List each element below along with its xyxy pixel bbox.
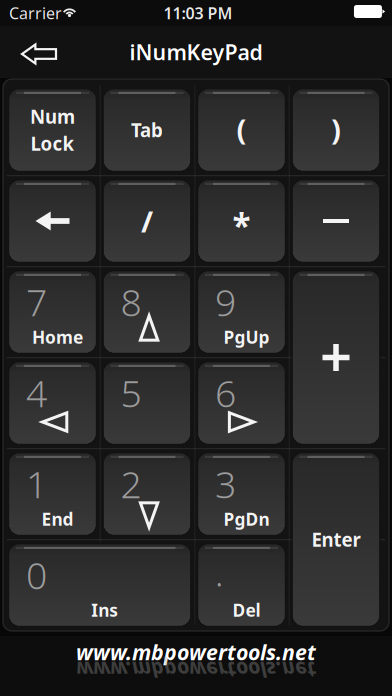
staticText: Num — [30, 104, 75, 129]
button[interactable]: * — [197, 179, 286, 263]
staticText: PgDn — [223, 507, 269, 530]
button[interactable]: 1 — [8, 452, 97, 536]
staticText: . — [215, 550, 223, 596]
staticText: Enter — [311, 527, 360, 552]
button[interactable]: 5 — [102, 361, 191, 445]
staticText: www.mbpowertools.net — [76, 638, 316, 666]
staticText: 6 — [215, 368, 236, 418]
button[interactable]: ( — [197, 88, 286, 172]
staticText: Del — [232, 598, 260, 621]
button[interactable]: 7 — [8, 270, 97, 354]
staticText: Home — [32, 325, 83, 348]
button[interactable]: 9 — [197, 270, 286, 354]
staticText: 2 — [120, 459, 141, 509]
staticText: 4 — [26, 368, 47, 418]
staticText: Tab — [131, 118, 163, 142]
staticText: 3 — [215, 459, 236, 509]
staticText: End — [41, 507, 73, 530]
button[interactable]: / — [102, 179, 191, 263]
button[interactable]: Back — [8, 31, 70, 77]
button[interactable]: ) — [291, 88, 380, 172]
button[interactable]: Tab — [102, 88, 191, 172]
button[interactable]: Plus — [291, 270, 380, 445]
button[interactable]: 8 — [102, 270, 191, 354]
staticText: 11:03 PM — [163, 2, 232, 24]
staticText: Ins — [91, 598, 118, 621]
staticText: Lock — [30, 131, 74, 156]
staticText: 5 — [120, 368, 141, 418]
staticText: PgUp — [223, 325, 269, 348]
staticText: ) — [331, 109, 341, 148]
staticText: 8 — [120, 277, 141, 327]
button[interactable]: Enter — [291, 452, 380, 627]
button[interactable]: Num — [8, 88, 97, 172]
staticText: ( — [236, 109, 246, 148]
staticText: 7 — [26, 277, 47, 327]
button[interactable]: 3 — [197, 452, 286, 536]
staticText: 1 — [26, 459, 47, 509]
button[interactable]: 6 — [197, 361, 286, 445]
button[interactable]: Minus — [291, 179, 380, 263]
staticText: 0 — [26, 550, 47, 600]
staticText: / — [141, 201, 153, 240]
button[interactable]: 0 — [8, 543, 191, 627]
staticText: www.mbpowertools.net — [76, 656, 316, 684]
button[interactable]: 4 — [8, 361, 97, 445]
staticText: 9 — [215, 277, 236, 327]
staticText: iNumKeyPad — [129, 38, 262, 66]
button[interactable]: Backspace — [8, 179, 97, 263]
button[interactable]: . — [197, 543, 286, 627]
button[interactable]: 2 — [102, 452, 191, 536]
staticText: Carrier — [9, 2, 62, 24]
staticText: * — [232, 203, 250, 247]
